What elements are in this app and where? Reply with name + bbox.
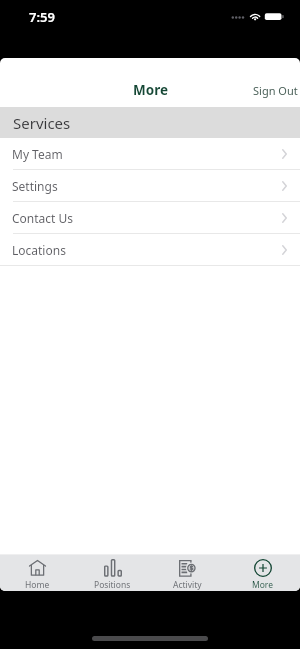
staticText: Home	[25, 579, 50, 591]
staticText: Settings	[12, 178, 58, 194]
button[interactable]: Activity	[150, 555, 225, 591]
button[interactable]: Contact Us	[0, 202, 300, 234]
staticText: My Team	[12, 146, 63, 162]
button[interactable]: My Team	[0, 138, 300, 170]
staticText: More	[252, 579, 273, 591]
button[interactable]: Sign Out	[241, 77, 300, 104]
button[interactable]: Settings	[0, 170, 300, 202]
staticText: Locations	[12, 242, 66, 258]
staticText: Contact Us	[12, 210, 74, 226]
button[interactable]: Home	[0, 555, 75, 591]
staticText: Activity	[173, 579, 202, 591]
staticText: More	[133, 81, 168, 99]
staticText: Sign Out	[253, 83, 298, 98]
button[interactable]: Locations	[0, 234, 300, 266]
staticText: Services	[13, 113, 71, 133]
staticText: 7:59	[29, 8, 55, 26]
button[interactable]: Positions	[75, 555, 150, 591]
button[interactable]: More	[225, 555, 300, 591]
staticText: Positions	[94, 579, 131, 591]
